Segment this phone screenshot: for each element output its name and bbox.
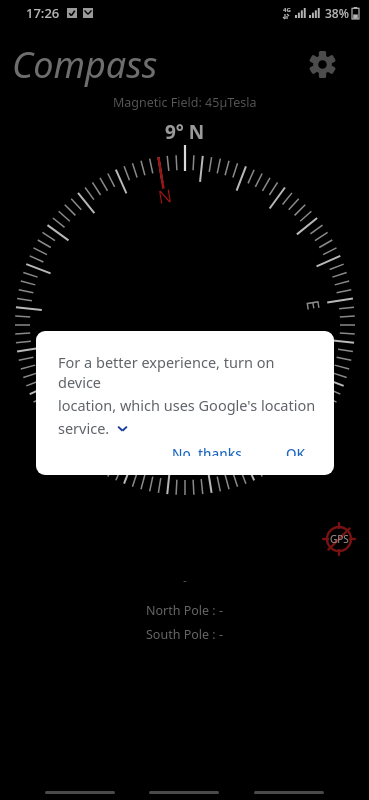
staticText: GPS	[330, 532, 349, 546]
button[interactable]: GPS off	[315, 515, 363, 563]
staticText: location, which uses Google's location	[58, 395, 316, 415]
staticText: Magnetic Field: 45µTesla	[113, 94, 257, 111]
staticText: N	[156, 183, 174, 209]
button[interactable]: Settings	[298, 40, 346, 88]
button[interactable]: Back	[44, 767, 116, 797]
staticText: service.	[58, 418, 110, 438]
staticText: 17:26	[26, 4, 60, 22]
staticText: North Pole : -	[146, 602, 223, 619]
staticText: South Pole : -	[146, 626, 223, 643]
staticText: 38%	[325, 5, 349, 21]
staticText: 4G	[283, 6, 291, 14]
button[interactable]: OK	[276, 438, 316, 463]
button[interactable]: Recents	[253, 767, 325, 797]
staticText: No, thanks	[172, 445, 242, 456]
staticText: -	[183, 572, 187, 588]
staticText: OK	[286, 445, 306, 456]
button[interactable]: Home	[148, 767, 220, 797]
button[interactable]: Expand	[115, 421, 129, 435]
staticText: Compass	[12, 40, 158, 89]
button[interactable]: No, thanks	[162, 438, 252, 463]
staticText: For a better experience, turn on device	[58, 352, 316, 392]
staticText: 9° N	[165, 119, 205, 145]
staticText: S	[198, 441, 212, 466]
staticText: E	[301, 298, 326, 312]
